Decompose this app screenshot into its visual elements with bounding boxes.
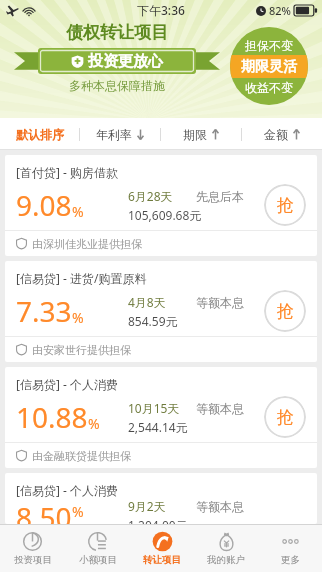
button[interactable]: 抢 — [264, 184, 306, 226]
button[interactable]: [信易贷] — [5, 473, 317, 524]
staticText: [信易贷] — [16, 270, 60, 286]
staticText: % — [72, 502, 84, 521]
button[interactable]: 转让项目 — [130, 525, 194, 572]
button[interactable]: 小额项目 — [65, 525, 130, 572]
staticText: 抢 — [277, 195, 294, 216]
staticText: 7.33 — [16, 292, 72, 330]
staticText: 854.59元 — [128, 313, 178, 329]
staticText: 更多 — [281, 554, 300, 566]
staticText: [信易贷] — [16, 482, 60, 498]
button[interactable]: [信易贷] — [5, 367, 317, 468]
staticText: 先息后本 — [196, 189, 244, 204]
button[interactable]: 抢 — [264, 396, 306, 438]
button[interactable]: 保障说明 — [230, 27, 308, 105]
staticText: 9月2天 — [128, 498, 166, 514]
staticText: 等额本息 — [196, 401, 244, 416]
button[interactable]: 更多 — [258, 525, 322, 572]
staticText: 4月8天 — [128, 294, 166, 310]
button[interactable]: 金额 — [242, 118, 322, 150]
staticText: [信易贷] — [16, 376, 60, 392]
staticText: 债权转让项目 — [66, 22, 168, 43]
button[interactable]: 我的账户 — [194, 525, 258, 572]
staticText: 2,544.14元 — [128, 419, 188, 435]
staticText: 抢 — [277, 407, 294, 428]
staticText: 10.88 — [16, 398, 88, 436]
staticText: 82% — [269, 3, 291, 18]
staticText: % — [88, 414, 100, 433]
staticText: 由金融联贷提供担保 — [32, 449, 131, 463]
staticText: 10月15天 — [128, 400, 180, 416]
staticText: 等额本息 — [196, 295, 244, 310]
staticText: 等额本息 — [196, 499, 244, 514]
staticText: 9.08 — [16, 186, 72, 224]
button[interactable]: [首付贷] — [5, 155, 317, 256]
staticText: 收益不变 — [245, 80, 293, 95]
staticText: 下午3:36 — [137, 2, 185, 18]
staticText: 抢 — [277, 301, 294, 322]
staticText: 期限 — [183, 127, 207, 142]
staticText: 由安家世行提供担保 — [32, 343, 131, 357]
staticText: % — [72, 308, 84, 327]
staticText: 担保不变 — [245, 38, 293, 53]
staticText: 默认排序 — [16, 127, 64, 142]
staticText: 金额 — [264, 127, 288, 142]
staticText: 投资项目 — [14, 554, 52, 566]
staticText: % — [72, 202, 84, 221]
staticText: 小额项目 — [79, 554, 117, 566]
staticText: 年利率 — [96, 127, 132, 142]
staticText: 1,204.00元 — [128, 517, 188, 524]
staticText: - 个人消费 — [60, 482, 119, 498]
button[interactable]: 投资项目 — [0, 525, 65, 572]
staticText: 多种本息保障措施 — [69, 78, 165, 93]
button[interactable]: 期限 — [161, 118, 241, 150]
staticText: 投资更放心 — [88, 52, 163, 71]
staticText: - 个人消费 — [60, 376, 119, 392]
button[interactable]: 默认排序 — [0, 118, 79, 150]
staticText: 期限灵活 — [241, 58, 297, 76]
staticText: 转让项目 — [143, 554, 181, 566]
staticText: 由深圳佳兆业提供担保 — [32, 237, 142, 251]
button[interactable]: [信易贷] — [5, 261, 317, 362]
staticText: 我的账户 — [207, 554, 245, 566]
staticText: 8.50 — [16, 498, 72, 524]
staticText: 105,609.68元 — [128, 207, 202, 223]
staticText: - 进货/购置原料 — [60, 270, 147, 286]
button[interactable]: 抢 — [264, 290, 306, 332]
staticText: 6月28天 — [128, 188, 173, 204]
button[interactable]: 年利率 — [80, 118, 160, 150]
staticText: - 购房借款 — [60, 164, 119, 180]
staticText: [首付贷] — [16, 164, 60, 180]
